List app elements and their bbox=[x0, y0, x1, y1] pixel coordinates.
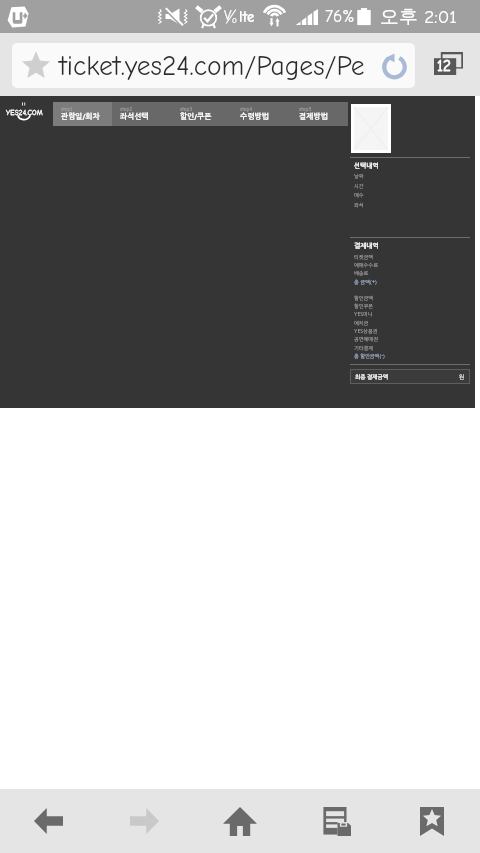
staticText: 관람일/회차 bbox=[61, 113, 100, 121]
staticText: 결제방법 bbox=[299, 113, 328, 121]
staticText: YES24.COM bbox=[6, 109, 43, 117]
staticText: 할인/쿠폰 bbox=[180, 113, 212, 121]
staticText: 시간 bbox=[354, 184, 364, 189]
staticText: step2 bbox=[120, 106, 133, 112]
staticText: 좌석 bbox=[354, 203, 364, 208]
staticText: 예치금 bbox=[354, 321, 369, 326]
staticText: 결제내역 bbox=[354, 242, 379, 249]
staticText: 날짜 bbox=[354, 174, 364, 179]
staticText: 할인쿠폰 bbox=[354, 304, 374, 309]
staticText: 티켓금액 bbox=[354, 255, 374, 260]
staticText: 기타결제 bbox=[354, 346, 374, 351]
staticText: 좌석선택 bbox=[120, 113, 149, 121]
button[interactable]: step5 bbox=[291, 102, 348, 126]
staticText: lte bbox=[239, 8, 255, 25]
button[interactable]: Tabs, 12 open bbox=[420, 43, 468, 88]
staticText: 수령방법 bbox=[240, 113, 269, 121]
button[interactable]: Saved pages bbox=[288, 789, 384, 853]
staticText: 공연예매권 bbox=[354, 337, 378, 342]
staticText: 배송료 bbox=[354, 271, 369, 276]
staticText: 선택내역 bbox=[354, 162, 379, 169]
staticText: YES상품권 bbox=[354, 329, 378, 334]
staticText: 76% bbox=[325, 7, 355, 27]
staticText: 12 bbox=[437, 57, 451, 74]
button[interactable]: Bookmarks bbox=[384, 789, 480, 853]
staticText: ticket.yes24.com/Pages/Pe bbox=[59, 50, 365, 82]
staticText: 오후 2:01 bbox=[380, 5, 457, 29]
staticText: step3 bbox=[180, 106, 193, 112]
button[interactable]: step1 bbox=[53, 102, 112, 126]
button[interactable]: Forward bbox=[96, 789, 192, 853]
staticText: V bbox=[224, 7, 232, 23]
staticText: 매수 bbox=[354, 193, 364, 198]
button[interactable]: Back bbox=[0, 789, 96, 853]
button[interactable]: Home bbox=[192, 789, 288, 853]
staticText: 총 할인금액(-) bbox=[354, 354, 385, 359]
staticText: step5 bbox=[299, 106, 312, 112]
staticText: YES머니 bbox=[354, 312, 373, 317]
button[interactable]: step2 bbox=[112, 102, 172, 126]
staticText: step4 bbox=[240, 106, 253, 112]
staticText: o bbox=[232, 15, 237, 25]
staticText: step1 bbox=[61, 106, 73, 112]
button[interactable]: step3 bbox=[172, 102, 232, 126]
button[interactable]: step4 bbox=[232, 102, 291, 126]
staticText: 할인금액 bbox=[354, 296, 374, 301]
staticText: 원 bbox=[459, 374, 465, 380]
staticText: 예매수수료 bbox=[354, 263, 378, 268]
button[interactable]: Reload page bbox=[374, 46, 414, 86]
staticText: 총 금액(+) bbox=[354, 280, 377, 285]
staticText: 최종 결제금액 bbox=[355, 374, 389, 380]
button[interactable]: ticket.yes24.com/Pages/Pe bbox=[12, 43, 415, 88]
